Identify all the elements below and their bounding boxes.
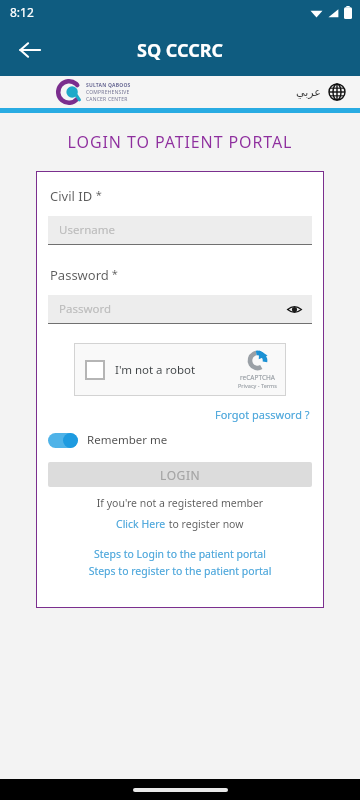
button[interactable]: I'm not a robot checkbox xyxy=(85,360,105,380)
button[interactable]: Password xyxy=(48,295,312,323)
button[interactable]: Steps to register to the patient portal xyxy=(48,564,312,578)
staticText: عربي xyxy=(296,86,321,99)
button[interactable]: Back xyxy=(8,28,52,72)
staticText: COMPREHENSIVE xyxy=(86,89,130,96)
staticText: Username xyxy=(59,222,115,238)
staticText: Civil ID xyxy=(50,187,93,205)
button[interactable]: Show password xyxy=(284,299,304,319)
staticText: Password xyxy=(50,266,109,284)
staticText: * xyxy=(109,266,118,281)
staticText: LOGIN TO PATIENT PORTAL xyxy=(0,131,360,153)
staticText: CANCER CENTER xyxy=(86,96,128,103)
button[interactable]: Forgot password ? xyxy=(213,405,312,424)
staticText: to register now xyxy=(166,517,244,531)
staticText: reCAPTCHA xyxy=(240,373,275,382)
staticText: I'm not a robot xyxy=(115,362,196,378)
staticText: If you're not a registered member xyxy=(48,496,312,510)
button[interactable]: Click Here xyxy=(116,517,166,531)
button[interactable]: LOGIN xyxy=(48,462,312,487)
button[interactable]: I'm not a robot checkbox xyxy=(74,343,286,396)
staticText: Privacy - Terms xyxy=(238,382,277,389)
staticText: 8:12 xyxy=(10,4,34,20)
staticText: Password xyxy=(59,301,112,317)
button[interactable]: Switch language to Arabic xyxy=(296,83,346,101)
button[interactable]: Remember me xyxy=(48,432,168,448)
button[interactable]: Steps to Login to the patient portal xyxy=(48,547,312,561)
staticText: SQ CCCRC xyxy=(137,38,224,63)
staticText: * xyxy=(93,187,102,202)
button[interactable]: Username xyxy=(48,216,312,244)
staticText: Remember me xyxy=(87,432,168,448)
staticText: SULTAN QABOOS xyxy=(86,82,131,89)
staticText: LOGIN xyxy=(160,467,201,483)
